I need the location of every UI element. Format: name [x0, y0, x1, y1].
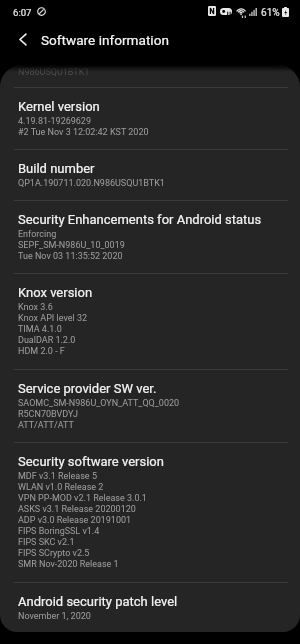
staticText: Tue Nov 03 11:35:52 2020 — [18, 251, 123, 262]
staticText: TIMA 4.1.0 — [18, 324, 62, 335]
staticText: Knox API level 32 — [18, 313, 87, 324]
staticText: Enforcing — [18, 229, 57, 240]
button[interactable]: Security Enhancements for Android status — [0, 200, 300, 273]
button[interactable]: Security software version — [0, 442, 300, 582]
staticText: Kernel version — [18, 99, 100, 114]
staticText: WLAN v1.0 Release 2 — [18, 482, 104, 493]
staticText: QP1A.190711.020.N986USQU1BTK1 — [18, 178, 165, 189]
button[interactable]: Android security patch level — [0, 582, 300, 632]
staticText: 61% — [261, 7, 280, 19]
staticText: VPN PP-MOD v2.1 Release 3.0.1 — [18, 493, 147, 504]
staticText: SAOMC_SM-N986U_OYN_ATT_QQ_0020 — [18, 398, 180, 409]
button[interactable]: Service provider SW ver. — [0, 369, 300, 442]
staticText: DualDAR 1.2.0 — [18, 335, 76, 346]
staticText: Knox 3.6 — [18, 302, 53, 313]
staticText: R5CN70BVDYJ — [18, 409, 78, 420]
button[interactable]: Knox version — [0, 273, 300, 368]
staticText: FIPS SCrypto v2.5 — [18, 548, 90, 559]
staticText: ADP v3.0 Release 20191001 — [18, 515, 132, 526]
button[interactable]: Build number — [0, 149, 300, 200]
staticText: #2 Tue Nov 3 12:02:42 KST 2020 — [18, 127, 149, 138]
staticText: SEPF_SM-N986U_10_0019 — [18, 240, 125, 251]
staticText: November 1, 2020 — [18, 611, 91, 622]
button[interactable]: Kernel version — [0, 87, 300, 149]
staticText: Build number — [18, 161, 95, 176]
staticText: N986USQU1BTK1 — [18, 67, 90, 78]
staticText: Security software version — [18, 454, 164, 469]
staticText: ASKS v3.1 Release 20200120 — [18, 504, 136, 515]
staticText: ATT/ATT/ATT — [18, 420, 74, 431]
staticText: FIPS BoringSSL v1.4 — [18, 526, 100, 537]
staticText: Security Enhancements for Android status — [18, 212, 262, 227]
staticText: Android security patch level — [18, 594, 178, 609]
staticText: HDM 2.0 - F — [18, 346, 65, 357]
staticText: Service provider SW ver. — [18, 381, 157, 396]
staticText: MDF v3.1 Release 5 — [18, 471, 97, 482]
staticText: FIPS SKC v2.1 — [18, 537, 75, 548]
staticText: SMR Nov-2020 Release 1 — [18, 559, 119, 570]
staticText: Knox version — [18, 285, 93, 300]
staticText: 6:07 — [13, 7, 32, 18]
staticText: 4.19.81-19269629 — [18, 116, 91, 127]
button[interactable]: Navigate up — [9, 25, 37, 53]
staticText: Software information — [41, 32, 169, 48]
